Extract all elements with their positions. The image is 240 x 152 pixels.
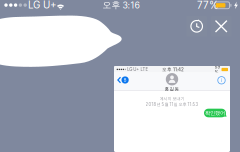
staticText: i xyxy=(221,77,222,84)
staticText: 오후 3:16 xyxy=(102,0,139,11)
staticText: 메시지 보내기 xyxy=(159,96,184,101)
button[interactable]: Back xyxy=(117,75,133,84)
staticText: LTE xyxy=(140,67,148,72)
staticText: 77% xyxy=(197,0,219,11)
staticText: 오후 11:42 xyxy=(162,66,184,72)
staticText: 확인했어 xyxy=(205,110,225,116)
button[interactable]: Close xyxy=(211,16,231,36)
staticText: LG U+ xyxy=(28,0,57,11)
staticText: LG U+ xyxy=(127,67,139,72)
staticText: 홍길동 xyxy=(164,86,179,92)
staticText: 8 xyxy=(124,77,127,83)
button[interactable]: Details xyxy=(217,76,226,85)
staticText: 69% xyxy=(214,64,220,75)
button[interactable]: Revert xyxy=(187,16,207,36)
staticText: 2018년 5월 11일 오후 11:53 xyxy=(145,102,198,107)
